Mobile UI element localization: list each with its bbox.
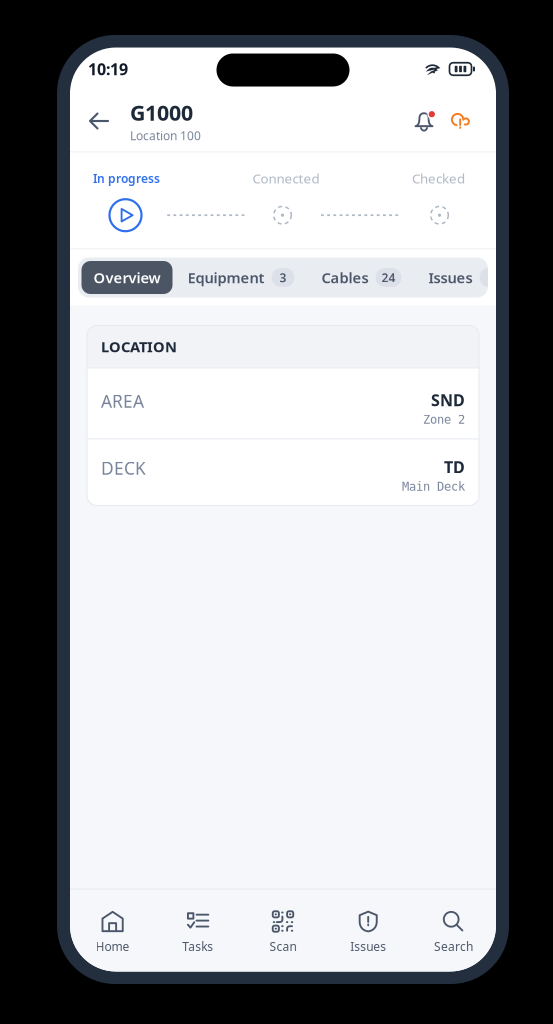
staticText: Location 100 [130,128,201,144]
staticText: LOCATION [101,337,177,356]
staticText: SND [431,389,465,411]
button[interactable]: Notifications [407,104,441,138]
staticText: Scan [269,938,296,954]
button[interactable]: Tasks [155,889,240,971]
staticText: G1000 [130,98,193,127]
staticText: Issues [350,938,386,954]
staticText: 24 [381,269,395,285]
staticText: In progress [93,170,160,186]
button[interactable]: Equipment [175,261,306,294]
staticText: Home [96,938,130,954]
staticText: Zone 2 [423,413,465,426]
staticText: TD [444,456,465,478]
staticText: Search [434,938,473,954]
staticText: AREA [101,389,144,412]
staticText: 3 [279,269,286,285]
button[interactable]: Overview [81,261,172,294]
staticText: Connected [252,169,319,187]
staticText: Overview [93,268,160,287]
staticText: DECK [101,456,146,479]
button[interactable]: Home [70,889,155,971]
staticText: Equipment [187,268,264,287]
button[interactable]: Sync status [443,104,477,138]
staticText: 10:19 [88,58,128,80]
staticText: Cables [321,268,368,287]
button[interactable]: Back [70,99,130,142]
button[interactable]: Issues [416,261,514,294]
staticText: Issues [428,268,472,287]
button[interactable]: Cables [309,261,413,294]
button[interactable]: Search [411,889,496,971]
button[interactable]: Issues [326,889,411,971]
staticText: Checked [412,169,465,187]
button[interactable]: Scan [240,889,326,971]
staticText: Main Deck [402,480,465,493]
staticText: Tasks [182,938,213,954]
